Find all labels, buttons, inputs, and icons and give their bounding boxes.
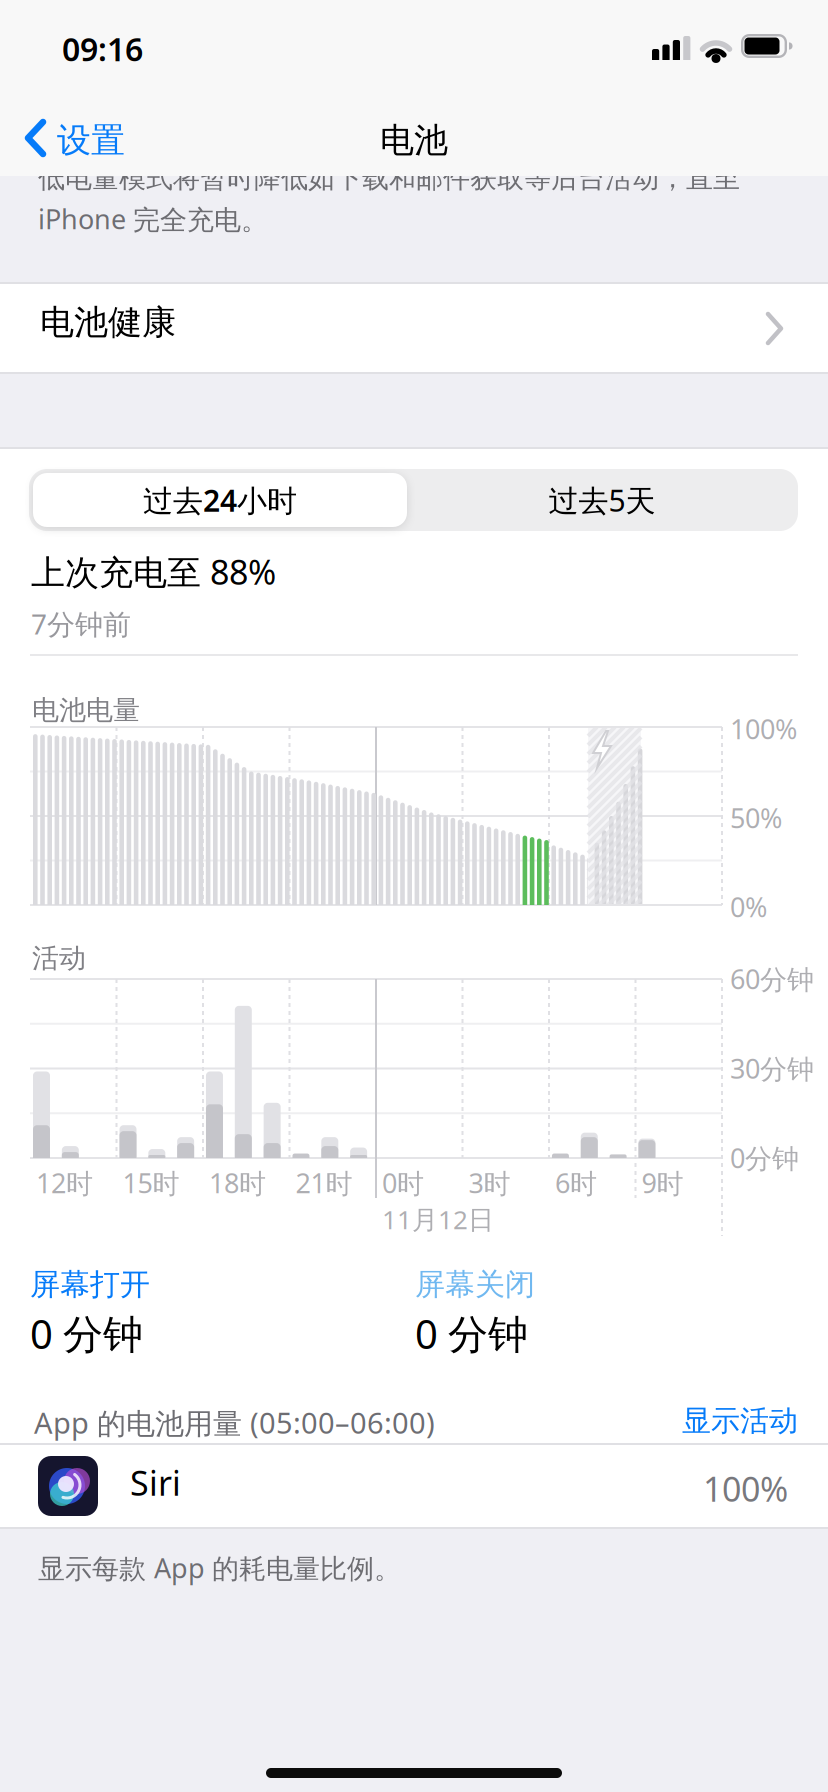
button[interactable]: Siri [0, 1445, 828, 1528]
staticText: 0 分钟 [415, 1301, 528, 1366]
staticText: Siri [130, 1455, 181, 1510]
staticText: 11月12日 [382, 1198, 494, 1240]
staticText: 显示活动 [682, 1399, 798, 1442]
staticText: 0分钟 [730, 1136, 799, 1180]
staticText: 活动 [32, 938, 86, 978]
staticText: 9时 [641, 1161, 683, 1205]
staticText: 电池健康 [40, 297, 176, 348]
staticText: 显示每款 App 的耗电量比例。 [38, 1546, 401, 1590]
staticText: 设置 [57, 115, 125, 166]
staticText: 电池电量 [32, 690, 140, 730]
button[interactable]: 电池健康 [0, 284, 828, 1792]
staticText: iPhone 完全充电。 [38, 197, 268, 241]
staticText: 过去24小时 [143, 476, 297, 524]
button[interactable]: 显示活动 [638, 1399, 798, 1442]
staticText: 屏幕关闭 [415, 1262, 535, 1307]
staticText: 21时 [295, 1161, 352, 1205]
staticText: 12时 [36, 1161, 93, 1205]
staticText: 0时 [382, 1161, 424, 1205]
staticText: 0% [730, 885, 767, 929]
staticText: 100% [730, 707, 797, 751]
staticText: 低电量模式将暂时降低如下载和邮件获取等后台活动，直至 [38, 158, 740, 198]
staticText: 电池 [380, 115, 448, 166]
button[interactable]: 过去24小时 [33, 473, 407, 527]
button[interactable]: 过去5天 [412, 473, 792, 527]
staticText: 6时 [555, 1161, 597, 1205]
staticText: 50% [730, 796, 782, 840]
button[interactable]: 屏幕关闭 [415, 1262, 755, 1358]
staticText: 上次充电至 88% [31, 544, 276, 599]
staticText: 0 分钟 [30, 1301, 143, 1366]
staticText: 15时 [122, 1161, 179, 1205]
staticText: 30分钟 [730, 1046, 814, 1090]
button[interactable]: 设置 [0, 88, 828, 1792]
staticText: 100% [703, 1461, 788, 1516]
button[interactable]: 屏幕打开 [30, 1262, 370, 1358]
staticText: 3时 [468, 1161, 510, 1205]
staticText: 09:16 [62, 23, 143, 75]
staticText: 60分钟 [730, 957, 814, 1001]
staticText: 过去5天 [548, 476, 655, 524]
staticText: App 的电池用量 (05:00–06:00) [34, 1399, 435, 1446]
staticText: 屏幕打开 [30, 1262, 150, 1307]
staticText: 18时 [209, 1161, 266, 1205]
staticText: 7分钟前 [31, 601, 131, 646]
